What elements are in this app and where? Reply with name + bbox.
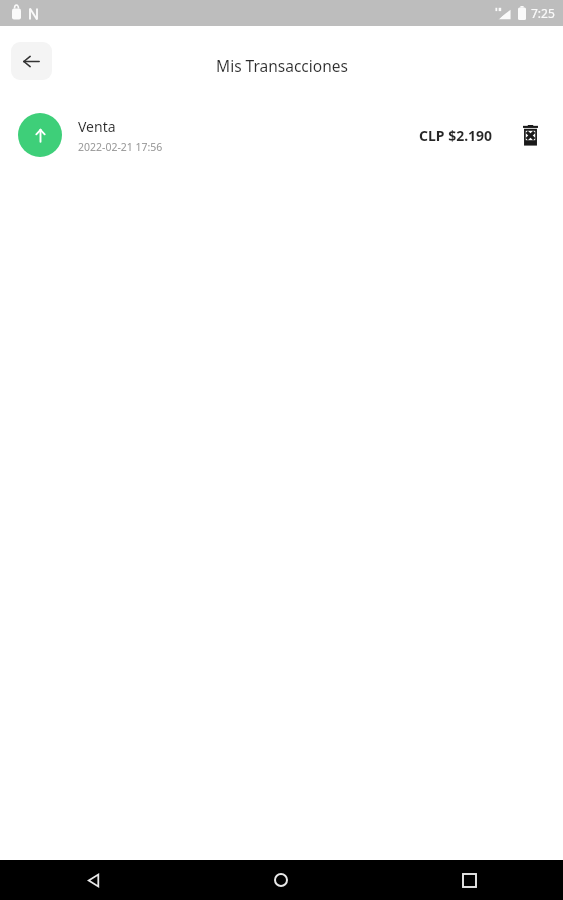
staticText: 7:25 <box>531 5 555 21</box>
staticText: Mis Transacciones <box>216 55 348 76</box>
staticText: CLP $2.190 <box>419 126 493 145</box>
button[interactable]: Back <box>11 42 52 80</box>
button[interactable]: Delete transaction <box>515 120 545 150</box>
staticText: Venta <box>78 117 116 136</box>
button[interactable]: Back <box>0 860 187 900</box>
staticText: 2022-02-21 17:56 <box>78 140 163 154</box>
button[interactable]: Venta <box>0 98 563 172</box>
button[interactable]: Recent apps <box>375 860 563 900</box>
button[interactable]: Home <box>187 860 375 900</box>
